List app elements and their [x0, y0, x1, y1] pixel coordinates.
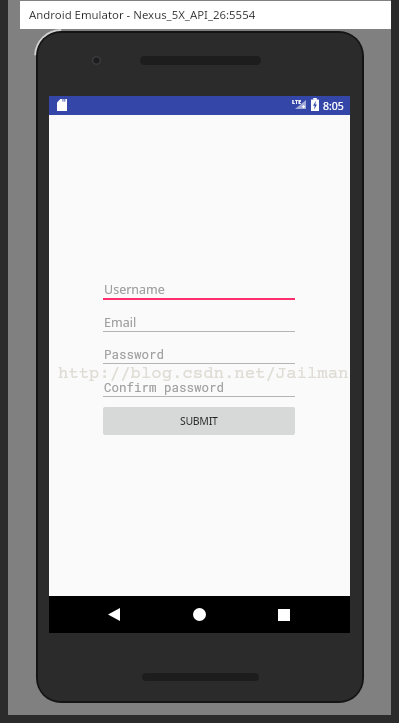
staticText: 8:05 — [323, 99, 344, 113]
button[interactable]: Home — [171, 596, 227, 633]
staticText: Password — [104, 346, 165, 362]
staticText: http://blog.csdn.net/Jailman — [58, 364, 349, 383]
staticText: Android Emulator - Nexus_5X_API_26:5554 — [29, 7, 256, 23]
button[interactable]: SUBMIT — [103, 407, 295, 435]
staticText: Confirm password — [104, 379, 225, 395]
staticText: SUBMIT — [180, 414, 218, 428]
button[interactable]: Recent apps — [256, 596, 312, 633]
staticText: Username — [104, 281, 165, 298]
button[interactable]: Back — [86, 596, 142, 633]
staticText: Email — [104, 314, 137, 331]
staticText: LTE — [292, 98, 302, 105]
